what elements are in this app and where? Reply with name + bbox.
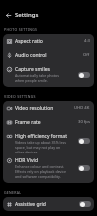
staticText: Settings (15, 11, 39, 19)
staticText: High efficiency format (15, 133, 67, 140)
staticText: UHD 4K (74, 105, 90, 111)
button[interactable]: HDR Vivid (3, 153, 94, 183)
staticText: Automatically take photos when people sm… (15, 73, 68, 83)
staticText: Capture smiles (15, 66, 50, 73)
button[interactable]: Video resolution (3, 101, 94, 115)
staticText: Frame rate (15, 119, 41, 126)
staticText: Audio control (15, 52, 47, 59)
button[interactable]: Aspect ratio (3, 34, 94, 48)
staticText: Aspect ratio (15, 38, 43, 45)
staticText: 30 fps (78, 119, 90, 125)
button[interactable]: High efficiency format (3, 129, 94, 153)
button[interactable]: Capture smiles (3, 62, 94, 87)
staticText: GENERAL (4, 190, 22, 195)
staticText: HDR Vivid (15, 157, 38, 164)
button[interactable]: Assistive grid (3, 197, 94, 211)
staticText: Enhance colour and contrast. Effects rel… (15, 164, 68, 179)
button[interactable]: Audio control (3, 48, 94, 62)
staticText: Video resolution (15, 105, 54, 112)
button[interactable]: Frame rate (3, 115, 94, 129)
staticText: Videos take up about 35% less space, but… (15, 140, 68, 153)
staticText: Assistive grid (15, 201, 46, 208)
staticText: PHOTO SETTINGS (4, 27, 38, 32)
staticText: Off (83, 52, 90, 58)
button[interactable]: Back (3, 10, 13, 20)
staticText: VIDEO SETTINGS (4, 94, 36, 99)
staticText: 4:3 (84, 38, 90, 44)
